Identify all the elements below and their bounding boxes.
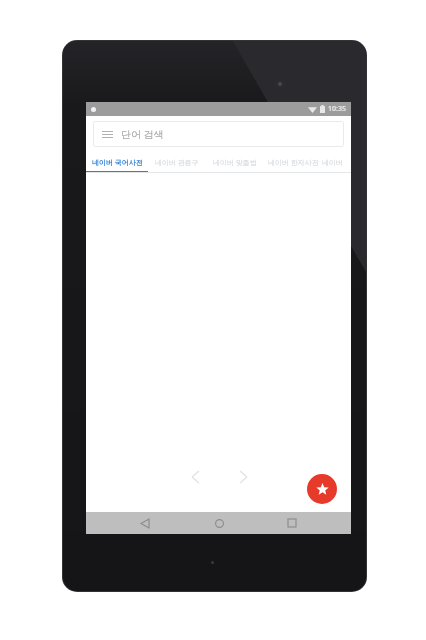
staticText: 단어 검색 (121, 127, 164, 141)
button[interactable]: 단어 검색 (93, 121, 344, 147)
button[interactable]: Home (205, 512, 233, 534)
button[interactable]: 네이버 국어사전 (86, 152, 148, 173)
staticText: 네이버 맞춤법 (213, 158, 257, 168)
button[interactable]: 네이버 고사성어 (322, 152, 351, 173)
button[interactable]: 네이버 맞춤법 (206, 152, 264, 173)
staticText: 네이버 관용구 (155, 158, 199, 168)
button[interactable]: Recent apps (278, 512, 306, 534)
button[interactable]: Previous page (182, 464, 208, 490)
staticText: 네이버 한자사전 (268, 158, 319, 168)
staticText: 네이버 국어사전 (92, 158, 143, 168)
button[interactable]: Back (131, 512, 159, 534)
button[interactable]: Favorites (307, 474, 337, 504)
button[interactable]: Next page (230, 464, 256, 490)
button[interactable]: 네이버 관용구 (148, 152, 206, 173)
staticText: 10:35 (328, 104, 346, 114)
staticText: 네이버 고사성어 (322, 158, 351, 168)
button[interactable]: 네이버 한자사전 (264, 152, 322, 173)
